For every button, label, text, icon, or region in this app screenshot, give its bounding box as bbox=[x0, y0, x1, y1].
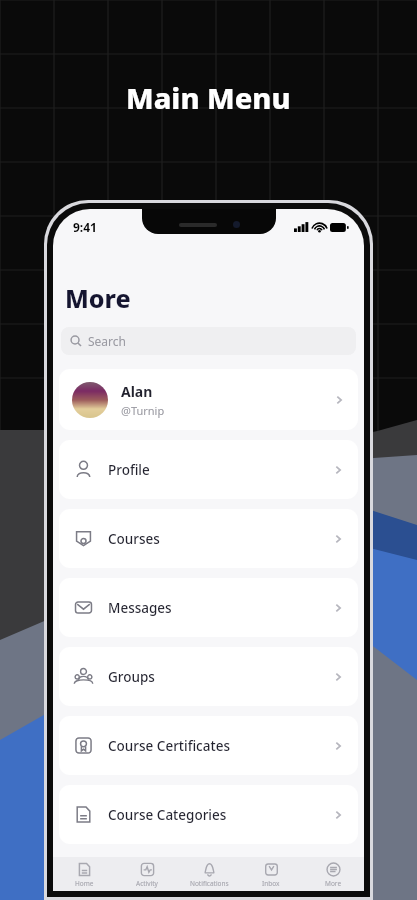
button[interactable]: Activity bbox=[116, 857, 178, 891]
button[interactable]: Alan bbox=[59, 369, 358, 430]
button[interactable]: Inbox bbox=[240, 857, 302, 891]
staticText: Main Menu bbox=[126, 78, 291, 117]
staticText: More bbox=[65, 281, 131, 315]
staticText: @Turnip bbox=[121, 403, 165, 418]
staticText: Courses bbox=[108, 530, 160, 548]
button[interactable]: Search bbox=[61, 327, 356, 355]
staticText: Course Certificates bbox=[108, 737, 230, 755]
staticText: Notifications bbox=[190, 879, 229, 888]
staticText: Home bbox=[75, 879, 94, 888]
button[interactable]: Profile bbox=[59, 440, 358, 499]
staticText: Profile bbox=[108, 461, 150, 479]
button[interactable]: Course Categories bbox=[59, 785, 358, 844]
button[interactable]: Home bbox=[53, 857, 116, 891]
staticText: Groups bbox=[108, 668, 155, 686]
staticText: Inbox bbox=[262, 879, 280, 888]
button[interactable]: Course Certificates bbox=[59, 716, 358, 775]
staticText: Search bbox=[88, 333, 126, 349]
button[interactable]: Groups bbox=[59, 647, 358, 706]
button[interactable]: Messages bbox=[59, 578, 358, 637]
staticText: More bbox=[325, 879, 342, 888]
staticText: Messages bbox=[108, 599, 172, 617]
staticText: 9:41 bbox=[73, 219, 97, 235]
button[interactable]: More bbox=[302, 857, 364, 891]
staticText: Course Categories bbox=[108, 806, 227, 824]
staticText: Alan bbox=[121, 382, 153, 401]
button[interactable]: Courses bbox=[59, 509, 358, 568]
button[interactable]: Notifications bbox=[178, 857, 240, 891]
staticText: Activity bbox=[136, 879, 158, 888]
